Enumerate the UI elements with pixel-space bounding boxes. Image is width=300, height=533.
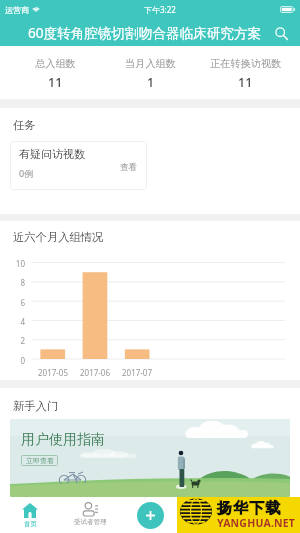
staticText: 正在转换访视数 xyxy=(210,57,282,70)
staticText: 近六个月入组情况 xyxy=(13,230,104,244)
staticText: 总入组数 xyxy=(35,57,76,70)
button[interactable]: 用户使用指南 xyxy=(10,419,290,497)
staticText: 0例 xyxy=(19,167,34,179)
button[interactable]: 正在转换访视数 xyxy=(198,46,293,99)
staticText: 任务 xyxy=(204,520,217,528)
button[interactable]: 总入组数 xyxy=(7,46,103,99)
staticText: 4 xyxy=(0,316,25,327)
staticText: 2017-06 xyxy=(74,367,116,378)
staticText: 运营商 xyxy=(5,5,29,15)
staticText: 11 xyxy=(48,74,63,91)
staticText: 6 xyxy=(0,297,25,308)
staticText: 查看 xyxy=(120,162,138,173)
staticText: 有疑问访视数 xyxy=(19,147,85,161)
staticText: 0 xyxy=(0,355,25,366)
staticText: YANGHUA.NET xyxy=(217,516,296,530)
button[interactable]: 受试者管理 xyxy=(60,498,120,533)
staticText: 首页 xyxy=(24,520,37,528)
staticText: 扬华下载 xyxy=(217,499,282,518)
staticText: 60度转角腔镜切割吻合器临床研究方案 xyxy=(28,23,262,42)
staticText: 11 xyxy=(238,74,253,91)
staticText: 10 xyxy=(0,258,25,269)
staticText: 我的 xyxy=(264,519,277,527)
staticText: 2017-07 xyxy=(116,367,158,378)
button[interactable]: Add xyxy=(137,502,164,529)
button[interactable]: 立即查看 xyxy=(21,455,58,466)
button[interactable]: Search xyxy=(272,24,290,42)
staticText: 2 xyxy=(0,335,25,346)
staticText: 立即查看 xyxy=(26,456,54,465)
staticText: 受试者管理 xyxy=(74,518,107,526)
staticText: 用户使用指南 xyxy=(21,431,105,449)
staticText: 2017-05 xyxy=(32,367,74,378)
button[interactable]: 首页 xyxy=(0,498,60,533)
staticText: 1 xyxy=(147,74,155,91)
button[interactable]: 当月入组数 xyxy=(103,46,198,99)
staticText: 8 xyxy=(0,277,25,288)
staticText: 当月入组数 xyxy=(125,57,176,70)
button[interactable]: 我的 xyxy=(240,498,300,533)
staticText: 任务 xyxy=(13,118,36,132)
button[interactable]: 任务 xyxy=(180,498,240,533)
button[interactable]: 有疑问访视数 xyxy=(10,141,147,190)
staticText: 新手入门 xyxy=(13,399,59,413)
staticText: 下午3:22 xyxy=(144,4,176,15)
